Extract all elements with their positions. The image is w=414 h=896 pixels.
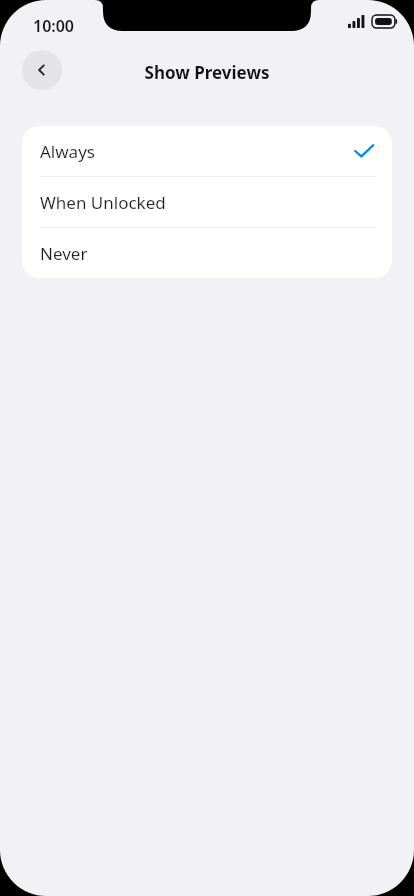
button[interactable]: When Unlocked [22, 177, 392, 227]
staticText: 10:00 [33, 15, 75, 37]
staticText: Show Previews [0, 61, 414, 84]
button[interactable]: Back [22, 50, 62, 90]
button[interactable]: Always [22, 126, 392, 176]
button[interactable]: Never [22, 228, 392, 278]
staticText: Always [40, 140, 95, 163]
staticText: When Unlocked [40, 191, 166, 214]
staticText: Never [40, 242, 88, 265]
